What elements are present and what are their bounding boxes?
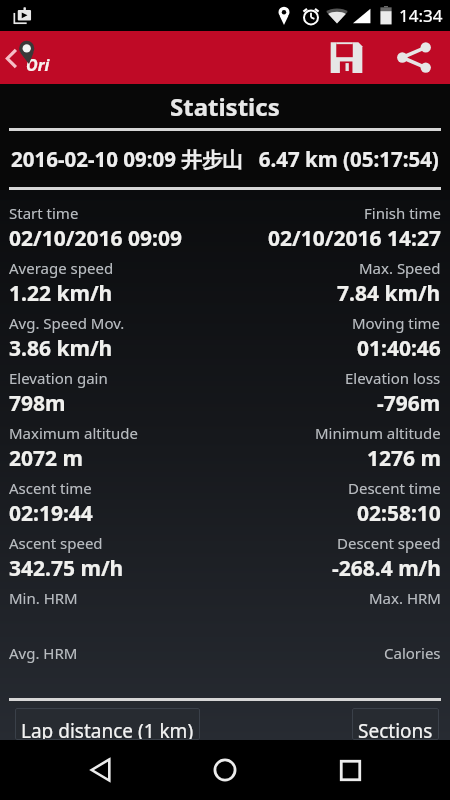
staticText: 1276 m (367, 444, 441, 473)
staticText: Descent time (348, 478, 441, 498)
staticText: 14:34 (399, 4, 443, 27)
button[interactable]: Share (391, 31, 437, 84)
staticText: Finish time (364, 203, 441, 223)
staticText: 1.22 km/h (9, 279, 113, 308)
staticText: Statistics (170, 90, 280, 123)
staticText: 02:58:10 (357, 499, 441, 528)
button[interactable]: Back (77, 747, 123, 793)
staticText: 7.84 km/h (337, 279, 441, 308)
staticText: Minimum altitude (315, 423, 441, 443)
staticText: Calories (384, 643, 441, 663)
staticText: 3.86 km/h (9, 334, 113, 363)
staticText: 01:40:46 (357, 334, 441, 363)
staticText: Ori (26, 54, 50, 76)
staticText: 342.75 m/h (9, 554, 124, 583)
staticText: Sections (358, 718, 433, 740)
staticText: Descent speed (337, 533, 441, 553)
staticText: Elevation loss (345, 368, 441, 388)
button[interactable]: Home (202, 747, 248, 793)
staticText: 798m (9, 389, 66, 418)
button[interactable]: Save (323, 31, 369, 84)
staticText: Ascent speed (9, 533, 103, 553)
staticText: 2016-02-10 09:09 井步山 6.47 km (05:17:54) (11, 145, 439, 173)
staticText: Avg. Speed Mov. (9, 313, 125, 333)
staticText: Ascent time (9, 478, 92, 498)
button[interactable]: OruxMaps home (22, 34, 62, 82)
staticText: Moving time (352, 313, 441, 333)
staticText: 2072 m (9, 444, 83, 473)
staticText: 02/10/2016 14:27 (268, 224, 441, 253)
button[interactable]: Navigate up (0, 33, 22, 83)
button[interactable]: Sections (352, 708, 439, 740)
staticText: Avg. HRM (9, 643, 78, 663)
staticText: -268.4 m/h (332, 554, 441, 583)
staticText: 02/10/2016 09:09 (9, 224, 182, 253)
staticText: Start time (9, 203, 79, 223)
staticText: Elevation gain (9, 368, 108, 388)
button[interactable]: Recent apps (327, 747, 373, 793)
staticText: Maximum altitude (9, 423, 138, 443)
button[interactable]: Lap distance (1 km) (15, 708, 200, 740)
staticText: Average speed (9, 258, 114, 278)
staticText: Lap distance (1 km) (21, 718, 194, 740)
staticText: Max. Speed (359, 258, 441, 278)
staticText: Min. HRM (9, 588, 78, 608)
staticText: 02:19:44 (9, 499, 93, 528)
staticText: -796m (377, 389, 441, 418)
staticText: Max. HRM (369, 588, 441, 608)
